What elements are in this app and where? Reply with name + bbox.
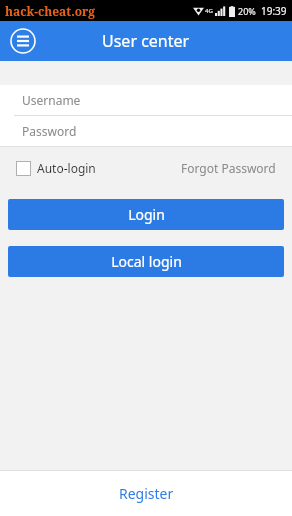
staticText: 20%: [238, 5, 256, 17]
staticText: hack-cheat.org: [5, 3, 96, 19]
button[interactable]: Login: [8, 199, 284, 230]
button[interactable]: Local login: [8, 246, 284, 277]
button[interactable]: Password: [0, 116, 292, 146]
button[interactable]: Username: [0, 85, 292, 115]
staticText: User center: [102, 30, 190, 52]
button[interactable]: Forgot Password: [181, 160, 276, 176]
staticText: Auto-login: [37, 160, 96, 176]
button[interactable]: Menu: [8, 26, 38, 56]
staticText: Password: [22, 123, 77, 139]
staticText: 4G: [205, 7, 213, 15]
button[interactable]: Auto-login: [16, 160, 96, 176]
staticText: Username: [22, 92, 81, 108]
staticText: Login: [128, 205, 165, 224]
staticText: Forgot Password: [181, 160, 276, 176]
staticText: Local login: [111, 252, 182, 271]
staticText: Register: [119, 484, 174, 503]
staticText: 19:39: [261, 4, 287, 18]
button[interactable]: Register: [0, 471, 292, 516]
